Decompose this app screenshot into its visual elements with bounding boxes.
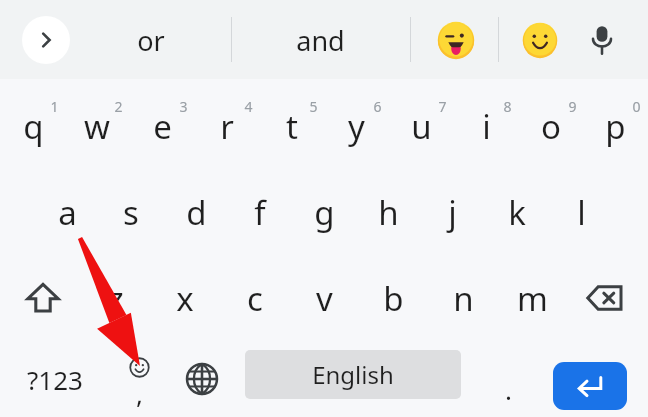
- staticText: w: [84, 104, 110, 149]
- staticText: ,: [136, 376, 143, 411]
- button[interactable]: x: [156, 256, 214, 340]
- button[interactable]: e: [130, 84, 194, 168]
- button[interactable]: .: [478, 348, 538, 410]
- staticText: y: [348, 104, 365, 149]
- staticText: e: [153, 104, 172, 149]
- button[interactable]: m: [503, 256, 561, 340]
- staticText: .: [505, 372, 512, 407]
- staticText: or: [137, 22, 165, 59]
- staticText: 2: [114, 97, 123, 116]
- button[interactable]: u: [389, 84, 453, 168]
- button[interactable]: y: [324, 84, 388, 168]
- staticText: ?123: [27, 362, 83, 397]
- button[interactable]: and: [262, 10, 378, 70]
- staticText: l: [577, 190, 586, 235]
- staticText: c: [247, 276, 263, 321]
- button[interactable]: d: [167, 170, 225, 254]
- staticText: t: [286, 104, 298, 149]
- staticText: 5: [309, 97, 318, 116]
- staticText: 0: [632, 97, 641, 116]
- staticText: a: [58, 190, 77, 235]
- button[interactable]: English: [245, 350, 461, 399]
- staticText: 3: [179, 97, 188, 116]
- staticText: m: [517, 276, 548, 321]
- button[interactable]: i: [454, 84, 518, 168]
- staticText: k: [508, 190, 526, 235]
- button[interactable]: w: [65, 84, 129, 168]
- staticText: n: [453, 276, 474, 321]
- button[interactable]: q: [1, 84, 65, 168]
- staticText: g: [314, 190, 335, 235]
- staticText: 8: [503, 97, 512, 116]
- button[interactable]: n: [434, 256, 492, 340]
- button[interactable]: o: [519, 84, 583, 168]
- staticText: b: [383, 276, 404, 321]
- button[interactable]: j: [423, 170, 481, 254]
- button[interactable]: r: [195, 84, 259, 168]
- button[interactable]: Winking face emoji: [432, 16, 480, 64]
- staticText: i: [482, 104, 491, 149]
- staticText: 7: [438, 97, 447, 116]
- staticText: h: [378, 190, 399, 235]
- button[interactable]: l: [552, 170, 610, 254]
- button[interactable]: Expand suggestions: [22, 16, 70, 64]
- staticText: d: [186, 190, 207, 235]
- staticText: u: [411, 104, 432, 149]
- button[interactable]: f: [231, 170, 289, 254]
- staticText: x: [176, 276, 194, 321]
- staticText: p: [605, 104, 626, 149]
- button[interactable]: Enter: [553, 362, 627, 410]
- button[interactable]: Voice input: [576, 14, 628, 66]
- staticText: 4: [244, 97, 253, 116]
- button[interactable]: t: [260, 84, 324, 168]
- staticText: s: [123, 190, 139, 235]
- staticText: 1: [50, 97, 59, 116]
- staticText: o: [541, 104, 561, 149]
- button[interactable]: Comma, emoji: [108, 348, 170, 410]
- staticText: English: [312, 358, 394, 391]
- button[interactable]: Change language: [172, 348, 232, 410]
- button[interactable]: g: [295, 170, 353, 254]
- staticText: f: [254, 190, 266, 235]
- staticText: 6: [373, 97, 382, 116]
- button[interactable]: b: [364, 256, 422, 340]
- staticText: 9: [568, 97, 577, 116]
- button[interactable]: ?123: [12, 348, 98, 410]
- button[interactable]: or: [96, 10, 206, 70]
- button[interactable]: Smiling face emoji: [516, 16, 564, 64]
- button[interactable]: c: [226, 256, 284, 340]
- staticText: j: [448, 190, 457, 235]
- staticText: v: [316, 276, 333, 321]
- button[interactable]: s: [102, 170, 160, 254]
- staticText: z: [108, 276, 124, 321]
- staticText: r: [220, 104, 234, 149]
- button[interactable]: a: [38, 170, 96, 254]
- button[interactable]: p: [583, 84, 647, 168]
- button[interactable]: z: [87, 256, 145, 340]
- button[interactable]: v: [295, 256, 353, 340]
- button[interactable]: Backspace: [573, 256, 637, 340]
- button[interactable]: h: [359, 170, 417, 254]
- button[interactable]: Shift: [11, 256, 75, 340]
- staticText: q: [23, 104, 44, 149]
- button[interactable]: k: [488, 170, 546, 254]
- staticText: and: [296, 22, 345, 59]
